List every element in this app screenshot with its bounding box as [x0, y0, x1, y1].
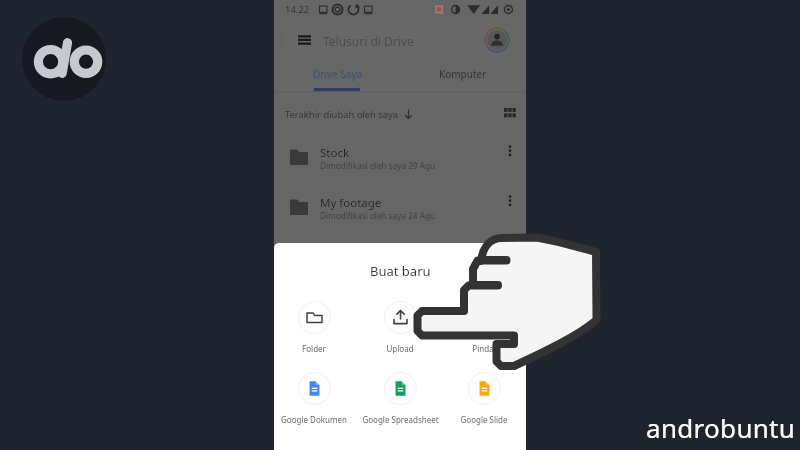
button[interactable]: Terakhir diubah oleh saya: [285, 104, 413, 124]
staticText: My footage: [320, 195, 382, 211]
button[interactable]: Switch to grid view: [504, 108, 516, 118]
staticText: Stock: [320, 145, 350, 161]
staticText: Folder: [302, 343, 326, 354]
staticText: Dimodifikasi oleh saya 24 Agu: [320, 210, 436, 221]
button[interactable]: Stock: [274, 141, 526, 187]
button[interactable]: Open navigation menu: [285, 22, 514, 58]
staticText: Komputer: [439, 67, 487, 81]
button[interactable]: Komputer: [400, 62, 525, 91]
staticText: 14.22: [285, 3, 310, 16]
button[interactable]: More options: [505, 195, 515, 209]
button[interactable]: My footage: [274, 191, 526, 237]
button[interactable]: Google Spreadsheet: [340, 372, 460, 425]
staticText: Drive Saya: [313, 67, 363, 81]
button[interactable]: Folder: [274, 301, 374, 354]
staticText: androbuntu: [646, 410, 796, 445]
button[interactable]: Pindai: [424, 301, 526, 354]
other: Open navigation menu: [298, 35, 311, 45]
staticText: Telusuri di Drive: [323, 33, 414, 49]
button[interactable]: Upload: [340, 301, 460, 354]
staticText: Dimodifikasi oleh saya 29 Agu: [320, 160, 436, 171]
staticText: Pindai: [472, 343, 496, 354]
button[interactable]: More options: [505, 145, 515, 159]
button[interactable]: Drive Saya: [275, 62, 400, 91]
staticText: Buat baru: [370, 262, 431, 280]
staticText: Google Slide: [460, 414, 508, 425]
button[interactable]: Account: [484, 27, 510, 53]
staticText: Google Spreadsheet: [362, 414, 439, 425]
staticText: Terakhir diubah oleh saya: [285, 108, 399, 121]
button[interactable]: Androbuntu logo: [22, 17, 106, 101]
staticText: Upload: [386, 343, 414, 354]
button[interactable]: Google Dokumen: [274, 372, 374, 425]
other: Tap here: [0, 0, 800, 450]
staticText: Google Dokumen: [281, 414, 347, 425]
button[interactable]: Google Slide: [424, 372, 526, 425]
